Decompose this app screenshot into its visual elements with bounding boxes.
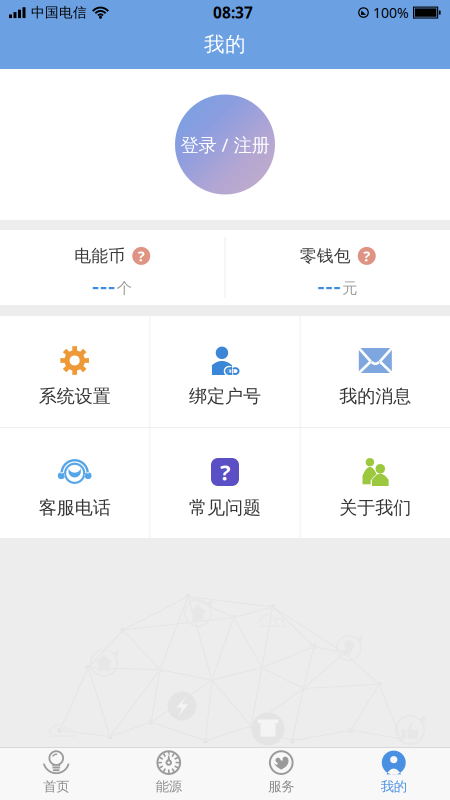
button[interactable]: 客服电话 — [0, 427, 149, 538]
button[interactable]: 绑定户号 — [150, 316, 300, 427]
staticText: 首页 — [43, 778, 69, 795]
staticText: 常见问题 — [189, 496, 261, 519]
staticText: 08:37 — [213, 2, 253, 23]
staticText: ? — [220, 457, 230, 487]
staticText: 登录 / 注册 — [180, 132, 269, 157]
button[interactable]: ? — [150, 427, 300, 538]
staticText: ? — [363, 246, 370, 266]
staticText: 系统设置 — [39, 385, 111, 408]
button[interactable]: 系统设置 — [0, 316, 149, 427]
staticText: 绑定户号 — [189, 385, 261, 408]
button[interactable]: 服务 — [225, 748, 337, 800]
button[interactable]: 零钱包 — [225, 230, 450, 305]
staticText: 100% — [373, 3, 409, 22]
staticText: 个 — [117, 278, 132, 298]
staticText: 我的 — [381, 778, 407, 795]
staticText: ? — [138, 246, 145, 266]
staticText: 中国电信 — [31, 4, 87, 21]
staticText: 能源 — [156, 778, 182, 795]
button[interactable]: 能源 — [112, 748, 225, 800]
staticText: 服务 — [268, 778, 294, 795]
staticText: 电能币 — [74, 245, 125, 266]
staticText: 我的 — [204, 32, 246, 57]
staticText: 我的消息 — [339, 385, 411, 408]
button[interactable]: 首页 — [0, 748, 112, 800]
button[interactable]: 我的消息 — [301, 316, 450, 427]
staticText: 客服电话 — [39, 496, 111, 519]
button[interactable]: 关于我们 — [301, 427, 450, 538]
staticText: 零钱包 — [300, 245, 351, 266]
button[interactable]: 我的 — [337, 748, 450, 800]
staticText: 关于我们 — [339, 496, 411, 519]
button[interactable]: 登录 / 注册 — [150, 94, 300, 194]
staticText: 元 — [342, 278, 357, 298]
button[interactable]: 电能币 — [0, 230, 224, 305]
